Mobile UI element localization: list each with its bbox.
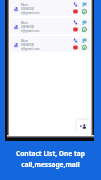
button[interactable]: Mum xyxy=(10,0,90,16)
staticText: Contact List, One tap xyxy=(16,149,85,158)
staticText: Mum xyxy=(21,39,29,43)
staticText: call,message,mail xyxy=(21,160,80,169)
button[interactable]: Message xyxy=(82,2,87,7)
button[interactable]: WhatsApp xyxy=(82,27,87,32)
button[interactable]: Message xyxy=(82,38,87,43)
staticText: x@gmail.com xyxy=(21,47,40,51)
staticText: Mum xyxy=(21,21,29,25)
staticText: Mum xyxy=(21,3,29,7)
staticText: 00000000 xyxy=(21,43,35,47)
button[interactable]: WhatsApp xyxy=(82,9,87,14)
button[interactable]: Call xyxy=(73,20,78,25)
button[interactable]: Email xyxy=(73,27,78,32)
button[interactable]: Add contact xyxy=(77,120,90,133)
staticText: 00000000 xyxy=(21,7,35,11)
button[interactable]: Call xyxy=(73,2,78,7)
button[interactable]: Mum xyxy=(10,36,90,52)
button[interactable]: WhatsApp xyxy=(82,45,87,50)
button[interactable]: Call xyxy=(73,38,78,43)
staticText: x@gmail.com xyxy=(21,11,40,15)
button[interactable]: Email xyxy=(73,9,78,14)
staticText: x@gmail.com xyxy=(21,29,40,33)
staticText: 00000000 xyxy=(21,25,35,29)
button[interactable]: Message xyxy=(82,20,87,25)
button[interactable]: Email xyxy=(73,45,78,50)
button[interactable]: Mum xyxy=(10,18,90,34)
